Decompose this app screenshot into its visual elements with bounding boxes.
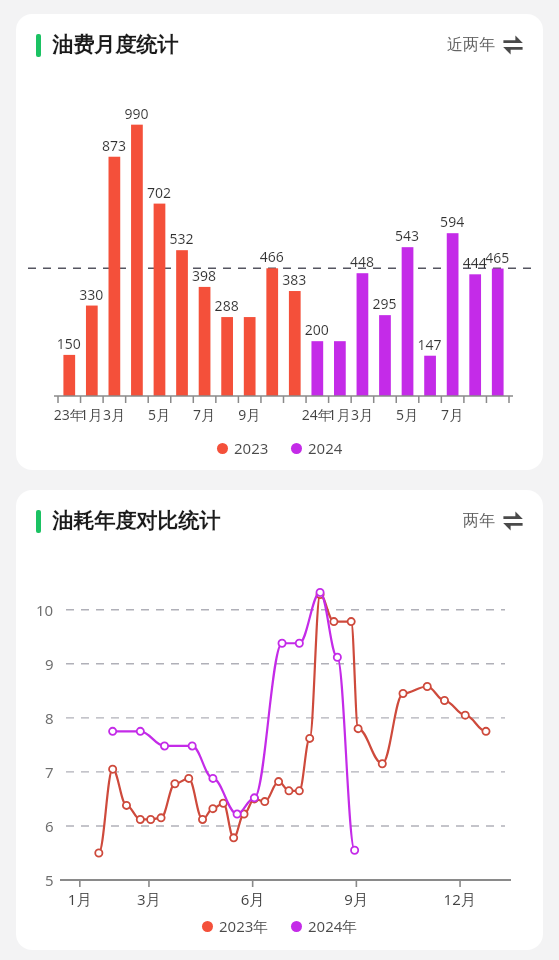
button[interactable]: 油费月度统计 bbox=[16, 14, 543, 470]
button[interactable]: Switch range bbox=[461, 507, 525, 535]
staticText: 两年 bbox=[463, 511, 495, 531]
staticText: 近两年 bbox=[447, 35, 495, 55]
button[interactable]: 油耗年度对比统计 bbox=[16, 490, 543, 950]
staticText: 2024 bbox=[308, 438, 343, 458]
staticText: 2023 bbox=[234, 438, 269, 458]
staticText: 2023年 bbox=[219, 916, 269, 936]
staticText: 油耗年度对比统计 bbox=[52, 508, 220, 534]
button[interactable]: Switch range bbox=[445, 31, 525, 59]
staticText: 油费月度统计 bbox=[52, 32, 178, 58]
staticText: 2024年 bbox=[308, 916, 358, 936]
